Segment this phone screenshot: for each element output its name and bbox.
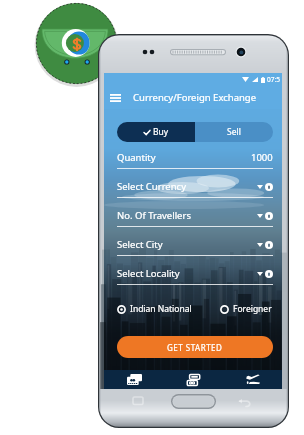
staticText: 07:5	[267, 75, 280, 84]
button[interactable]: GET STARTED	[117, 336, 273, 358]
button[interactable]: Indian National	[117, 303, 192, 315]
button[interactable]: Select City	[117, 234, 273, 263]
button[interactable]: Sell	[195, 122, 273, 142]
staticText: 1000	[251, 151, 273, 164]
staticText: Quantity	[117, 151, 251, 164]
button[interactable]: Buy	[117, 122, 195, 142]
button[interactable]: Open navigation menu	[107, 89, 124, 106]
button[interactable]: Quantity	[117, 147, 273, 176]
button[interactable]: Foreigner	[220, 303, 272, 315]
staticText: Indian National	[130, 303, 192, 315]
button[interactable]: Money transfer	[164, 370, 223, 389]
staticText: No. Of Travellers	[117, 209, 257, 222]
staticText: GET STARTED	[167, 342, 223, 353]
staticText: Select Currency	[117, 180, 257, 193]
staticText: Foreigner	[233, 303, 272, 315]
button[interactable]: Travel	[223, 370, 282, 389]
staticText: Currency/Foreign Exchange	[133, 91, 257, 104]
staticText: Buy	[153, 126, 169, 138]
button[interactable]: Select Locality	[117, 263, 273, 292]
staticText: Select Locality	[117, 267, 257, 280]
button[interactable]: Currency notes	[104, 370, 164, 389]
staticText: Select City	[117, 238, 257, 251]
button[interactable]: No. Of Travellers	[117, 205, 273, 234]
button[interactable]: Select Currency	[117, 176, 273, 205]
staticText: Sell	[227, 126, 241, 138]
